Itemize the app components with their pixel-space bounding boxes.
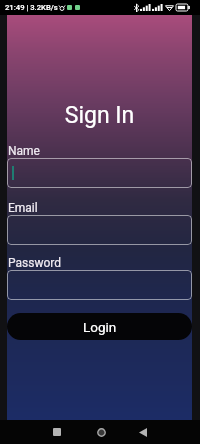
button[interactable]: Recent apps bbox=[49, 424, 65, 440]
button[interactable]: Back bbox=[135, 424, 151, 440]
staticText: Login bbox=[83, 319, 117, 335]
button[interactable]: Login bbox=[7, 313, 192, 340]
staticText: Email bbox=[8, 201, 38, 215]
staticText: 21:49 | 3.2KB/s bbox=[5, 3, 58, 12]
button[interactable] bbox=[7, 215, 192, 245]
button[interactable] bbox=[7, 158, 192, 188]
staticText: Sign In bbox=[7, 102, 192, 129]
staticText: Password bbox=[8, 256, 62, 270]
staticText: Name bbox=[8, 144, 40, 158]
button[interactable]: Home bbox=[93, 424, 109, 440]
button[interactable] bbox=[7, 270, 192, 300]
